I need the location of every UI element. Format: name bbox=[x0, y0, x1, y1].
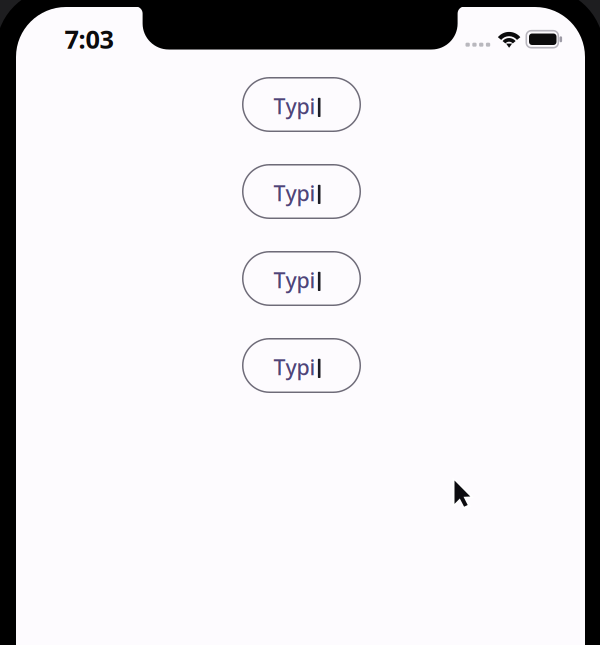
button[interactable]: Typi bbox=[242, 338, 361, 393]
staticText: Typi bbox=[273, 353, 315, 381]
button[interactable]: Typi bbox=[242, 77, 361, 132]
staticText: Typi bbox=[273, 266, 315, 294]
staticText: 7:03 bbox=[64, 22, 113, 56]
staticText: Typi bbox=[273, 179, 315, 207]
button[interactable]: Typi bbox=[242, 164, 361, 219]
button[interactable]: Typi bbox=[242, 251, 361, 306]
staticText: Typi bbox=[273, 92, 315, 120]
